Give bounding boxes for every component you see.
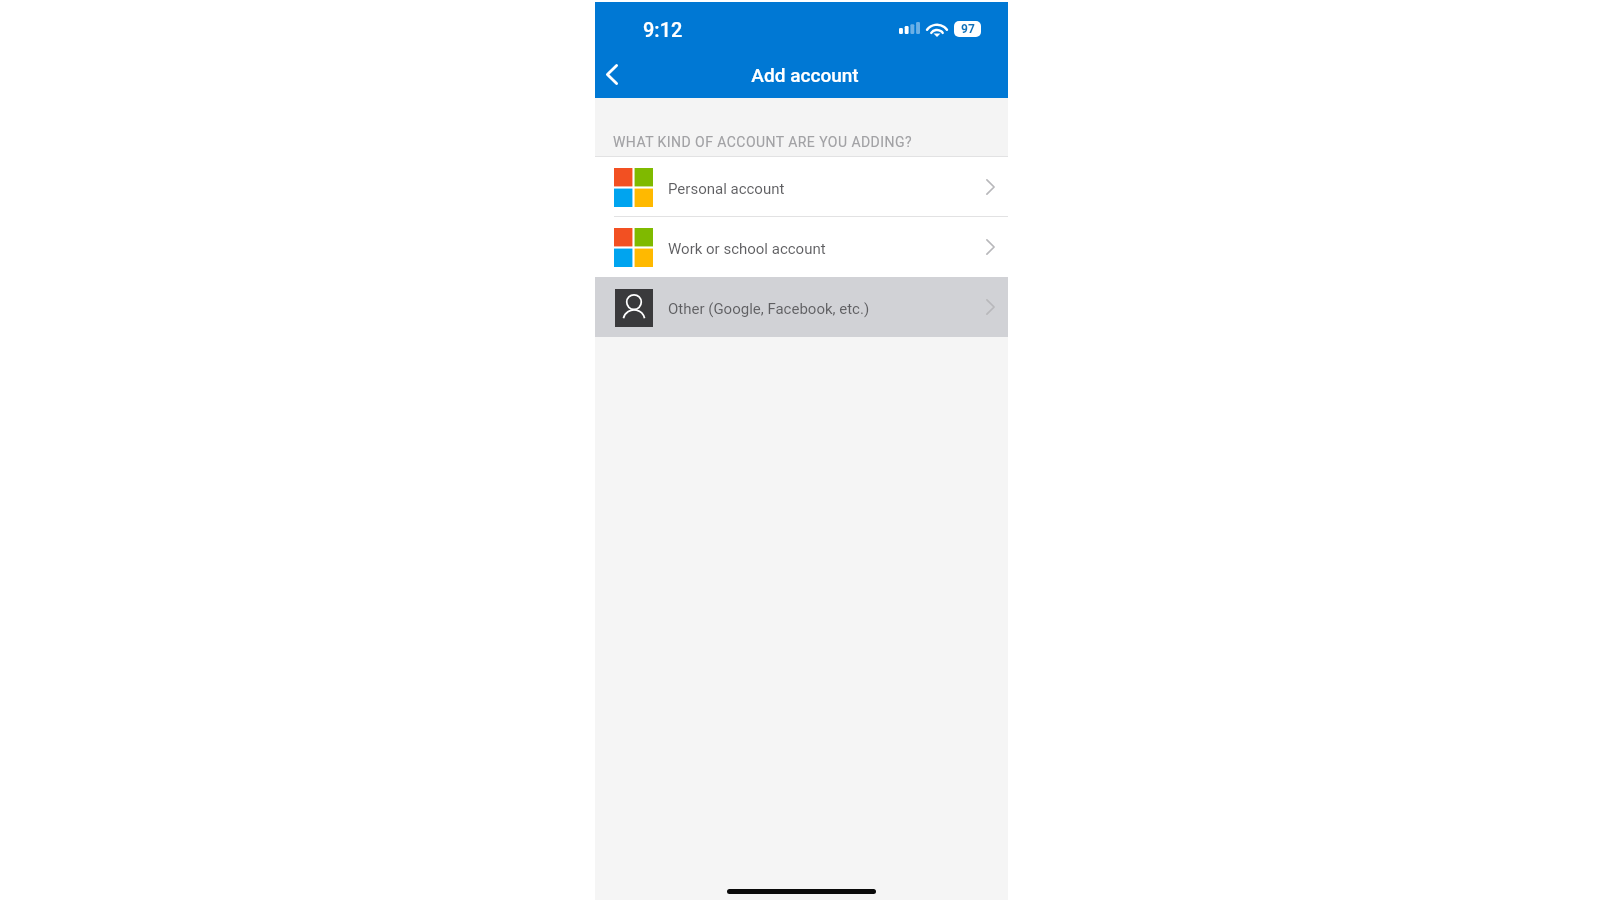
button[interactable]: Back [595,52,629,97]
staticText: Personal account [668,180,785,198]
button[interactable]: Other (Google, Facebook, etc.) [595,277,1008,337]
staticText: Add account [751,64,859,86]
staticText: Work or school account [668,240,826,258]
staticText: 97 [961,22,975,36]
button[interactable]: Work or school account [595,217,1008,277]
staticText: Other (Google, Facebook, etc.) [668,300,870,318]
staticText: 9:12 [643,18,683,41]
button[interactable]: Personal account [595,157,1008,217]
staticText: WHAT KIND OF ACCOUNT ARE YOU ADDING? [613,134,912,150]
